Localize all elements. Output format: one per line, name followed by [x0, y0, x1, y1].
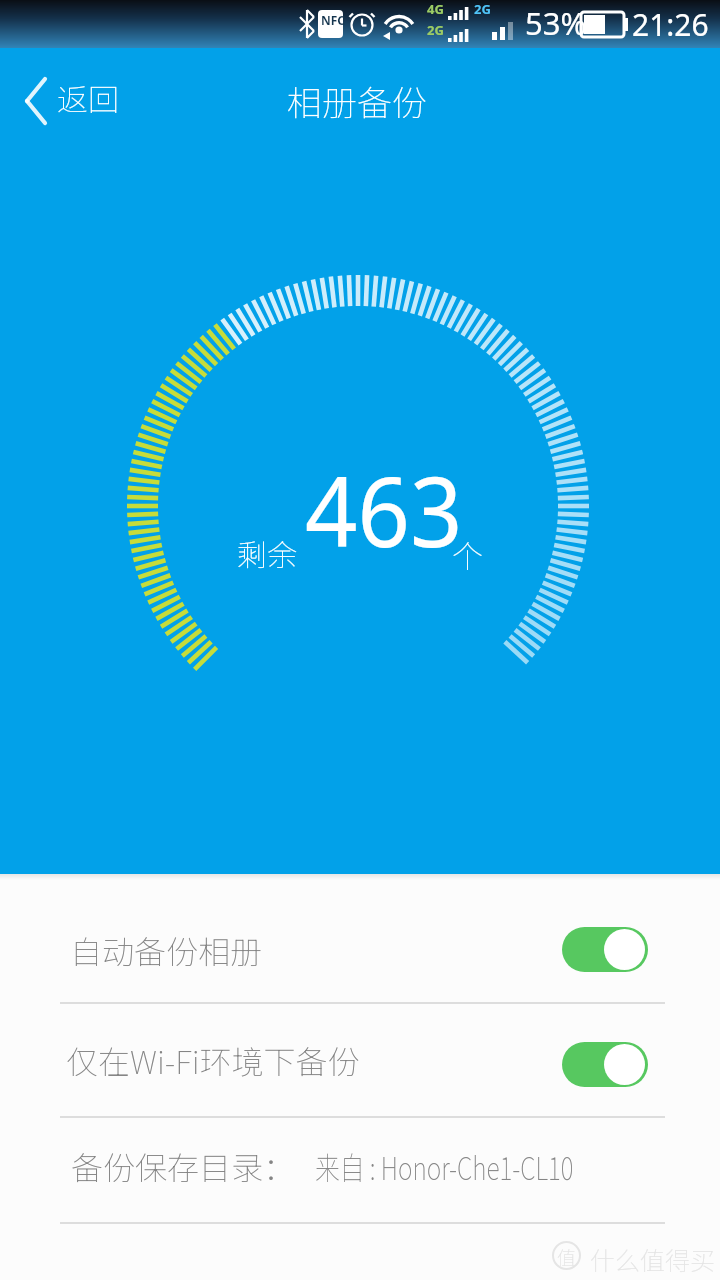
staticText: 相册备份 [287, 75, 428, 126]
button[interactable]: 备份保存目录： [0, 1116, 720, 1222]
staticText: 53% [525, 2, 587, 44]
staticText: 备份保存目录： [71, 1143, 296, 1189]
button[interactable]: 仅在Wi-Fi环境下备份 [0, 1002, 720, 1116]
staticText: 个 [452, 532, 483, 577]
staticText: 21:26 [632, 4, 709, 45]
button[interactable]: 自动备份相册 [0, 872, 720, 1002]
button[interactable] [562, 1042, 648, 1087]
staticText: 2G [427, 21, 444, 39]
button[interactable] [562, 927, 648, 972]
staticText: 返回 [57, 75, 119, 120]
staticText: 什么值得买 [590, 1241, 716, 1277]
staticText: 来自 : Honor-Che1-CL10 [315, 1143, 574, 1189]
staticText: 剩余 [237, 531, 297, 574]
staticText: 仅在Wi-Fi环境下备份 [66, 1037, 360, 1083]
button[interactable]: 返回 [0, 48, 130, 152]
staticText: 4G [427, 0, 444, 18]
staticText: 值 [557, 1243, 577, 1271]
staticText: 2G [474, 0, 491, 18]
staticText: 自动备份相册 [70, 927, 263, 973]
staticText: 463 [305, 444, 463, 575]
staticText: NFC [321, 12, 346, 28]
